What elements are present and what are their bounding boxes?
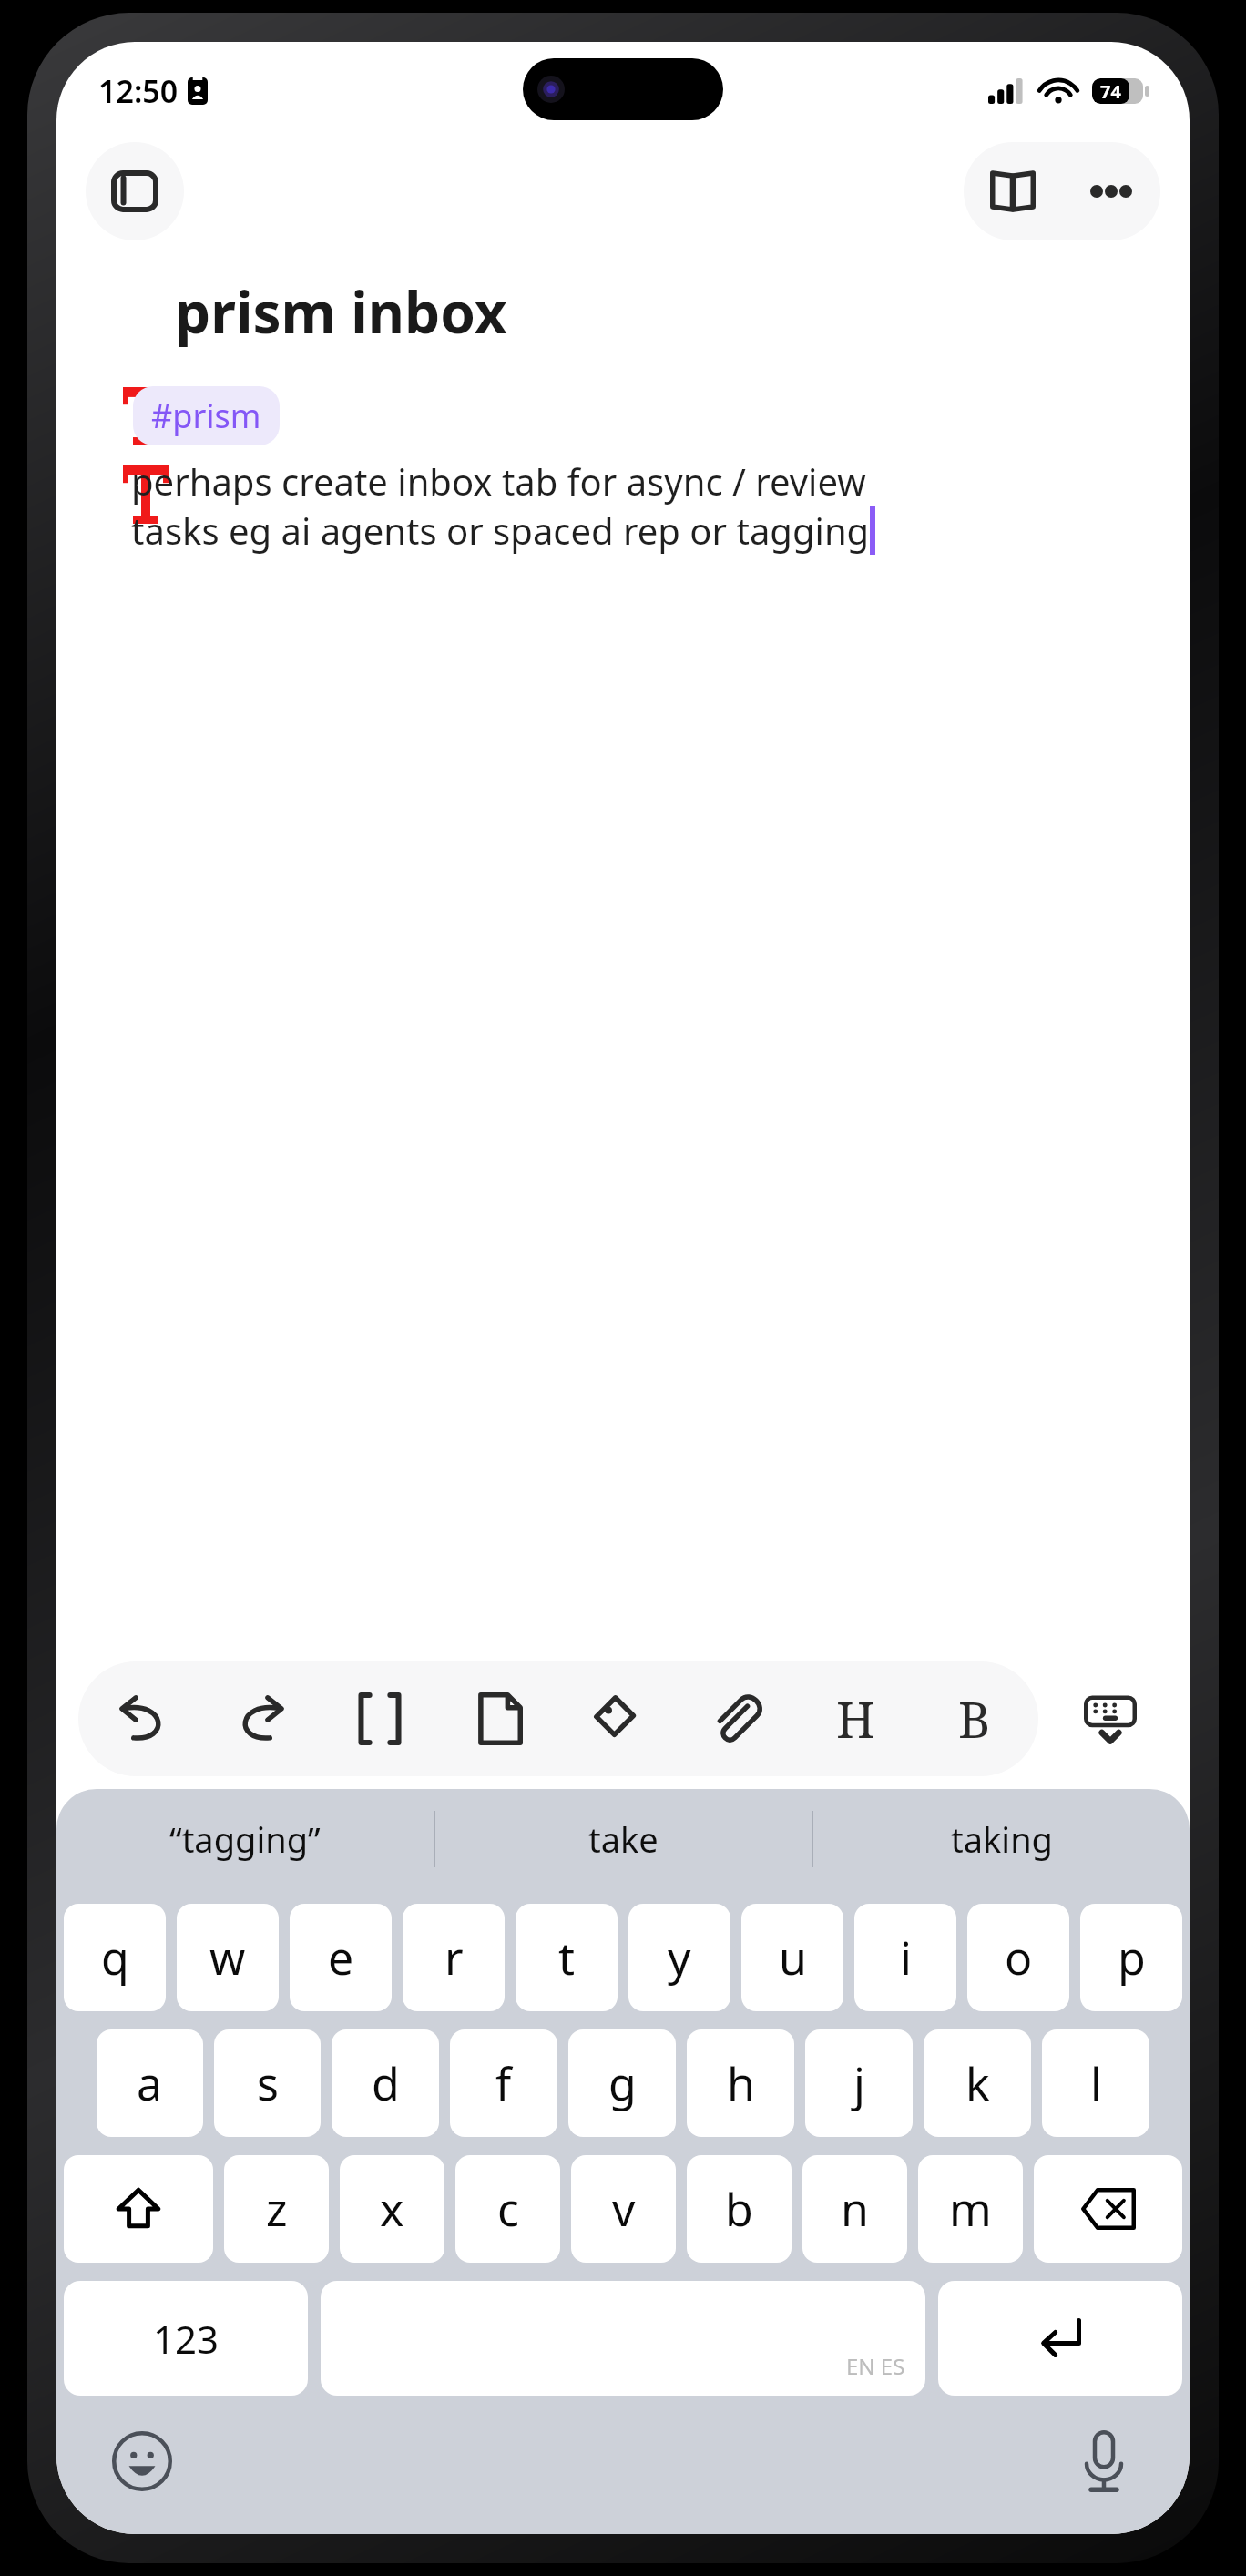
staticText: a [137, 2052, 163, 2114]
button[interactable]: n [802, 2155, 907, 2263]
staticText: #prism [151, 394, 261, 438]
staticText: B [958, 1685, 991, 1753]
staticText: prism inbox [175, 273, 507, 350]
button[interactable]: r [403, 1904, 505, 2011]
button[interactable]: Toggle sidebar [86, 142, 184, 240]
staticText: 74 [1100, 79, 1121, 104]
staticText: 123 [153, 2313, 220, 2365]
staticText: n [841, 2178, 869, 2240]
staticText: d [372, 2052, 400, 2114]
staticText: h [727, 2052, 755, 2114]
button[interactable]: Shift [64, 2155, 213, 2263]
button[interactable]: Redo [207, 1661, 316, 1776]
staticText: s [257, 2052, 279, 2114]
button[interactable]: q [64, 1904, 166, 2011]
staticText: b [725, 2178, 753, 2240]
button[interactable]: a [97, 2029, 203, 2137]
button[interactable]: Dictation [1062, 2419, 1146, 2503]
staticText: x [380, 2178, 404, 2240]
button[interactable]: f [450, 2029, 557, 2137]
staticText: EN ES [846, 2351, 905, 2381]
button[interactable]: i [854, 1904, 956, 2011]
button[interactable]: 123 [64, 2281, 308, 2396]
button[interactable]: c [455, 2155, 560, 2263]
staticText: w [209, 1927, 246, 1988]
button[interactable]: Bold [920, 1661, 1029, 1776]
button[interactable]: Hide keyboard [1053, 1661, 1168, 1776]
button[interactable]: o [967, 1904, 1069, 2011]
staticText: u [779, 1927, 807, 1988]
button[interactable]: More options [1062, 142, 1160, 240]
button[interactable]: Emoji [100, 2419, 184, 2503]
button[interactable]: m [918, 2155, 1023, 2263]
button[interactable]: New document [444, 1661, 554, 1776]
button[interactable]: Space [321, 2281, 925, 2396]
button[interactable]: “tagging” [56, 1789, 434, 1889]
button[interactable]: w [177, 1904, 279, 2011]
button[interactable]: l [1042, 2029, 1149, 2137]
button[interactable]: k [924, 2029, 1031, 2137]
button[interactable]: z [224, 2155, 329, 2263]
staticText: perhaps create inbox tab for async / rev… [131, 456, 866, 506]
staticText: z [266, 2178, 288, 2240]
staticText: taking [951, 1815, 1053, 1863]
staticText: “tagging” [169, 1815, 321, 1863]
staticText: j [853, 2052, 865, 2114]
button[interactable]: Reader view [964, 142, 1062, 240]
button[interactable]: t [516, 1904, 618, 2011]
button[interactable]: Attach file [682, 1661, 792, 1776]
staticText: take [588, 1815, 659, 1863]
button[interactable]: Insert brackets [325, 1661, 434, 1776]
staticText: m [949, 2178, 992, 2240]
staticText: g [608, 2052, 637, 2114]
staticText: o [1005, 1927, 1033, 1988]
staticText: t [558, 1927, 576, 1988]
button[interactable]: j [805, 2029, 913, 2137]
button[interactable]: v [571, 2155, 676, 2263]
button[interactable]: b [687, 2155, 792, 2263]
staticText: c [497, 2178, 519, 2240]
button[interactable]: s [214, 2029, 321, 2137]
staticText: f [495, 2052, 512, 2114]
staticText: l [1090, 2052, 1102, 2114]
staticText: r [444, 1927, 464, 1988]
staticText: v [612, 2178, 636, 2240]
staticText: e [328, 1927, 354, 1988]
button[interactable]: p [1080, 1904, 1182, 2011]
button[interactable]: Return [938, 2281, 1182, 2396]
staticText: i [900, 1927, 912, 1988]
button[interactable]: Heading [801, 1661, 910, 1776]
staticText: q [101, 1927, 129, 1988]
button[interactable]: h [687, 2029, 794, 2137]
staticText: y [668, 1927, 691, 1988]
button[interactable]: d [332, 2029, 439, 2137]
staticText: tasks eg ai agents or spaced rep or tagg… [131, 506, 870, 555]
button[interactable]: take [435, 1789, 812, 1889]
staticText: p [1118, 1927, 1146, 1988]
button[interactable]: g [568, 2029, 676, 2137]
button[interactable]: taking [813, 1789, 1190, 1889]
staticText: 12:50 [98, 70, 179, 112]
staticText: H [836, 1685, 875, 1753]
button[interactable]: #prism [133, 386, 280, 445]
button[interactable]: x [340, 2155, 444, 2263]
button[interactable]: e [290, 1904, 392, 2011]
button[interactable]: u [741, 1904, 843, 2011]
button[interactable]: Backspace [1034, 2155, 1182, 2263]
button[interactable]: Add tag [563, 1661, 672, 1776]
staticText: k [965, 2052, 990, 2114]
button[interactable]: y [628, 1904, 730, 2011]
button[interactable]: Undo [87, 1661, 197, 1776]
